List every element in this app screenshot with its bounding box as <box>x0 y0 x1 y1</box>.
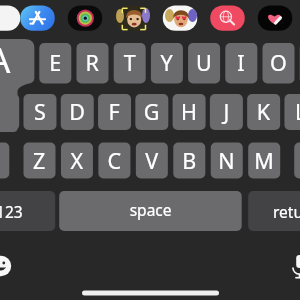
button[interactable] <box>0 0 300 300</box>
